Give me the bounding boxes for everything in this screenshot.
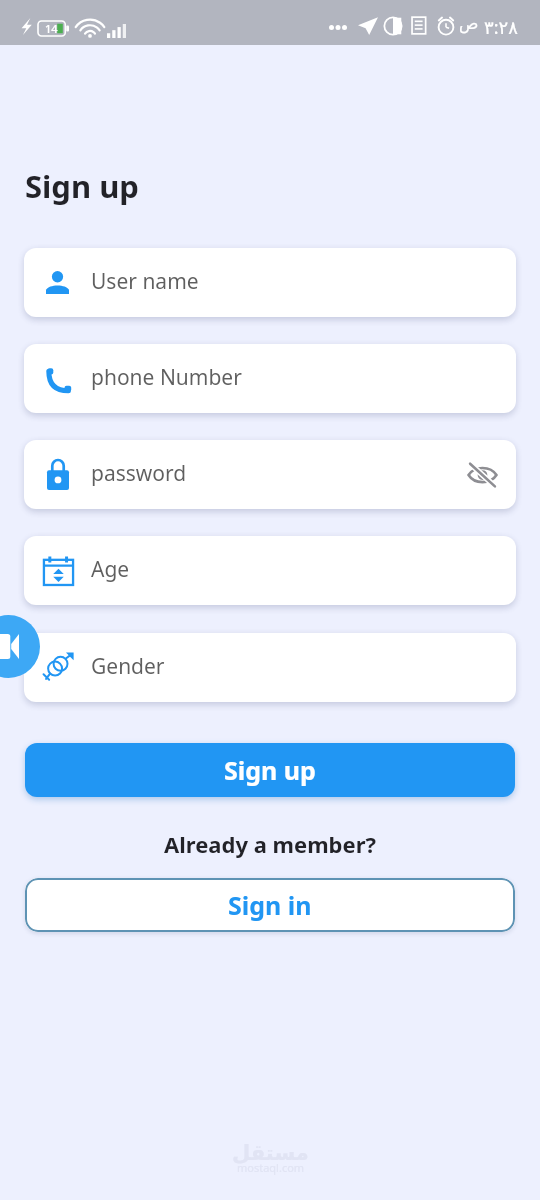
button[interactable]: Sign in <box>25 878 515 932</box>
button[interactable]: password <box>24 440 516 509</box>
button[interactable]: Video call <box>0 615 40 678</box>
staticText: ٣:٢٨ <box>484 15 518 40</box>
staticText: password <box>91 459 187 488</box>
button[interactable]: Gender <box>24 633 516 702</box>
staticText: ص <box>459 14 479 33</box>
button[interactable]: phone Number <box>24 344 516 413</box>
staticText: Sign in <box>228 888 312 922</box>
staticText: phone Number <box>91 363 242 392</box>
staticText: Age <box>91 555 130 584</box>
staticText: 14 <box>45 21 58 36</box>
button[interactable]: Age <box>24 536 516 605</box>
button[interactable]: Sign up <box>25 743 515 797</box>
staticText: Gender <box>91 652 165 681</box>
staticText: Already a member? <box>0 829 540 859</box>
button[interactable]: User name <box>24 248 516 317</box>
staticText: mostaql.com <box>237 1160 305 1175</box>
staticText: User name <box>91 267 199 296</box>
staticText: Sign up <box>224 753 316 787</box>
staticText: مستقل <box>232 1141 309 1165</box>
staticText: Sign up <box>25 165 139 207</box>
